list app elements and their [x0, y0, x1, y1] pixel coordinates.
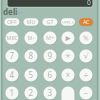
staticText: M-	[27, 34, 34, 42]
staticText: √	[83, 51, 88, 61]
staticText: GT	[46, 18, 53, 26]
button[interactable]: MU	[23, 18, 39, 26]
staticText: ON/CE	[62, 19, 74, 25]
button[interactable]: 4	[5, 68, 19, 82]
button[interactable]: 2	[24, 86, 38, 100]
staticText: 1	[9, 88, 14, 98]
button[interactable]: +	[61, 86, 75, 100]
staticText: 2	[28, 88, 33, 98]
button[interactable]: ON/CE	[60, 18, 75, 26]
button[interactable]: OFF	[4, 18, 20, 26]
staticText: 5	[28, 70, 33, 80]
button[interactable]: 3	[43, 86, 57, 100]
staticText: deli	[3, 6, 17, 17]
staticText: 1654	[14, 10, 22, 15]
staticText: 4	[9, 70, 14, 80]
button[interactable]: M-	[24, 31, 38, 45]
button[interactable]: 7	[5, 49, 19, 63]
button[interactable]: ×	[61, 68, 75, 82]
button[interactable]: AC	[78, 18, 93, 26]
staticText: 8	[28, 51, 33, 61]
staticText: 3	[47, 88, 52, 98]
staticText: %	[83, 34, 89, 42]
staticText: 6	[47, 70, 52, 80]
button[interactable]: M+	[43, 31, 57, 45]
staticText: ▶	[65, 34, 70, 42]
staticText: AC	[83, 18, 89, 26]
button[interactable]: −	[79, 86, 93, 100]
button[interactable]: ✳	[61, 49, 75, 63]
button[interactable]: 9	[43, 49, 57, 63]
staticText: MU	[26, 18, 35, 26]
button[interactable]: MRC	[5, 31, 19, 45]
button[interactable]: ÷	[79, 68, 93, 82]
staticText: 7	[9, 51, 14, 61]
button[interactable]: %	[79, 31, 93, 45]
button[interactable]: ▶	[61, 31, 75, 45]
staticText: MRC	[6, 34, 17, 42]
button[interactable]: √	[79, 49, 93, 63]
staticText: ×	[65, 70, 70, 80]
staticText: 9	[47, 51, 52, 61]
button[interactable]: GT	[42, 18, 58, 26]
staticText: −	[83, 88, 88, 98]
button[interactable]: 8	[24, 49, 38, 63]
staticText: M+	[46, 34, 54, 42]
staticText: ✳	[65, 52, 71, 60]
button[interactable]: 1	[5, 86, 19, 100]
staticText: OFF	[7, 18, 17, 26]
button[interactable]: 6	[43, 68, 57, 82]
button[interactable]: 5	[24, 68, 38, 82]
staticText: 0	[87, 0, 91, 7]
staticText: ÷	[83, 70, 88, 80]
